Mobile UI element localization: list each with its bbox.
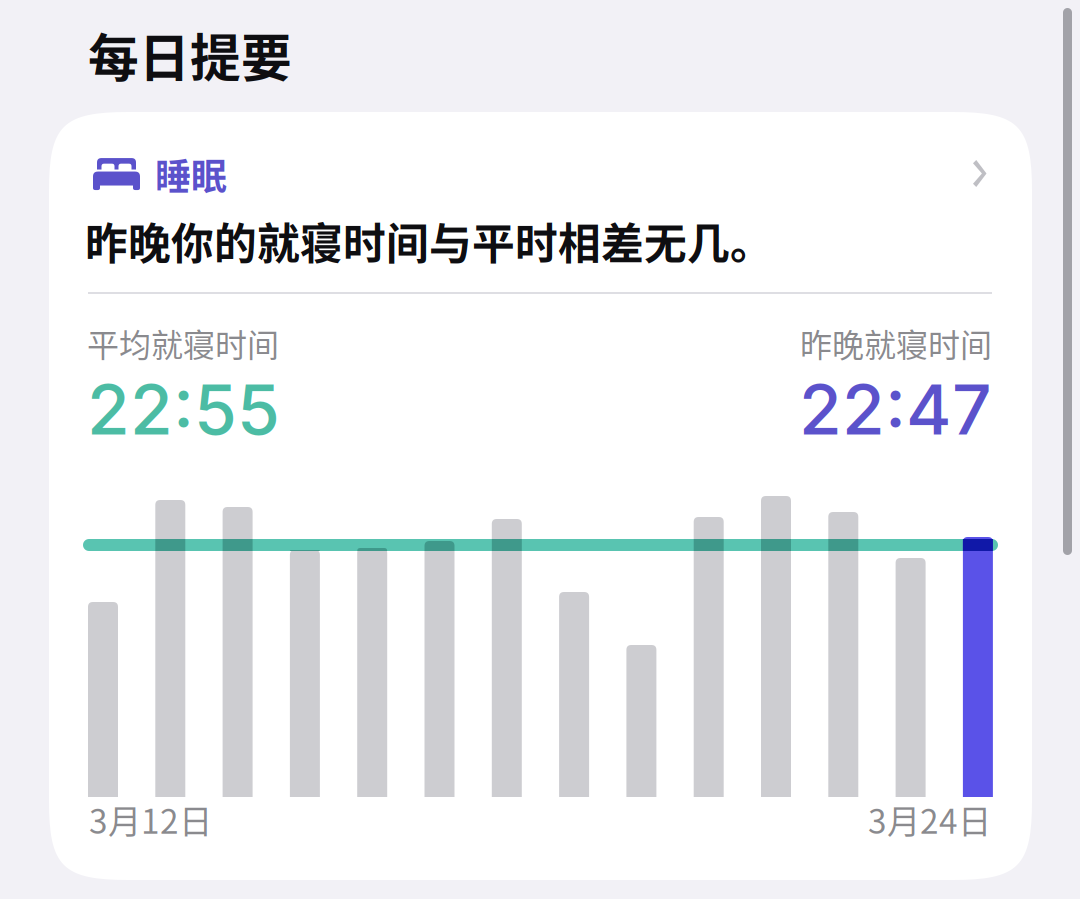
staticText: 3月12日	[89, 795, 212, 843]
staticText: 昨晚就寝时间	[800, 320, 992, 366]
button[interactable]: 睡眠	[49, 112, 1032, 880]
staticText: 22:47	[799, 367, 992, 451]
staticText: 平均就寝时间	[87, 320, 279, 366]
staticText: 昨晚你的就寝时间与平时相差无几。	[85, 210, 773, 272]
staticText: 3月24日	[868, 795, 991, 843]
staticText: 每日提要	[88, 18, 292, 91]
staticText: 睡眠	[155, 148, 227, 200]
staticText: 22:55	[87, 367, 280, 451]
